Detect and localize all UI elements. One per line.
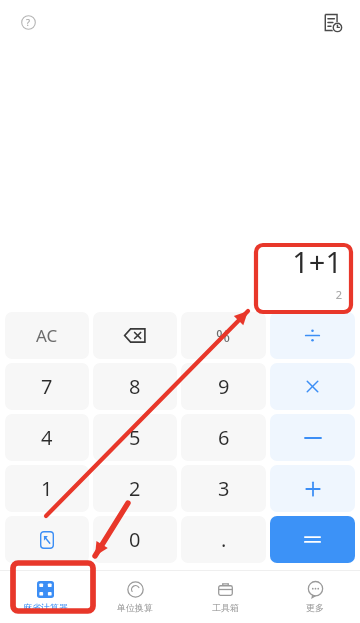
staticText: 更多	[306, 602, 324, 613]
button[interactable]: 工具箱	[180, 571, 270, 623]
staticText: 1	[41, 475, 53, 502]
button[interactable]: 4	[5, 414, 89, 461]
button[interactable]: History	[316, 6, 348, 38]
button[interactable]: Multiply	[270, 363, 355, 410]
staticText: 麻省计算器	[23, 602, 68, 613]
button[interactable]: 5	[93, 414, 177, 461]
button[interactable]: Equals	[270, 516, 355, 563]
button[interactable]: 单位换算	[90, 571, 180, 623]
staticText: 1+1	[292, 242, 342, 281]
button[interactable]: 3	[181, 465, 266, 512]
staticText: .	[221, 526, 227, 553]
button[interactable]: %	[181, 312, 266, 359]
button[interactable]: 7	[5, 363, 89, 410]
staticText: 单位换算	[117, 602, 153, 613]
staticText: 2	[335, 287, 342, 302]
button[interactable]: Plus	[270, 465, 355, 512]
staticText: 4	[41, 424, 53, 451]
button[interactable]: 0	[93, 516, 177, 563]
button[interactable]: 8	[93, 363, 177, 410]
button[interactable]: Divide	[270, 312, 355, 359]
button[interactable]: 更多	[270, 571, 360, 623]
button[interactable]: 2	[93, 465, 177, 512]
staticText: 7	[41, 373, 53, 400]
staticText: 9	[218, 373, 230, 400]
button[interactable]: Minus	[270, 414, 355, 461]
button[interactable]: Expand	[5, 516, 89, 563]
button[interactable]: 9	[181, 363, 266, 410]
button[interactable]: Help	[12, 6, 44, 38]
staticText: 8	[129, 373, 141, 400]
button[interactable]: Delete	[93, 312, 177, 359]
staticText: 5	[129, 424, 141, 451]
button[interactable]: 麻省计算器	[0, 571, 90, 623]
staticText: AC	[36, 324, 58, 347]
button[interactable]: 1	[5, 465, 89, 512]
staticText: 3	[218, 475, 230, 502]
staticText: 6	[218, 424, 230, 451]
staticText: ?	[26, 16, 31, 28]
staticText: %	[216, 324, 231, 347]
staticText: 0	[129, 526, 141, 553]
button[interactable]: AC	[5, 312, 89, 359]
staticText: 2	[129, 475, 141, 502]
button[interactable]: 6	[181, 414, 266, 461]
staticText: 工具箱	[212, 602, 239, 613]
button[interactable]: .	[181, 516, 266, 563]
